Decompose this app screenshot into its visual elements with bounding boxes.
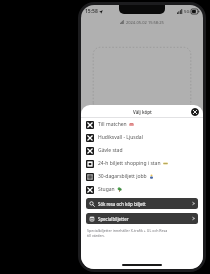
button[interactable]: Stugan [81, 183, 203, 196]
button[interactable]: Hudiksvall - Ljusdal [81, 131, 203, 144]
staticText: Gävle stad [98, 147, 123, 154]
staticText: Sök resa och köp biljett [98, 201, 146, 207]
button[interactable]: 24-h biljett shopping i stan [81, 157, 203, 170]
staticText: 15:58 [85, 8, 98, 15]
staticText: 30-dagarsbiljett jobb [98, 173, 147, 180]
staticText: Till matchen [98, 121, 127, 128]
button[interactable]: Specialbiljetter [86, 213, 198, 224]
button[interactable]: Sök resa och köp biljett [86, 198, 198, 209]
button[interactable]: Stäng [191, 108, 199, 116]
staticText: 24-h biljett shopping i stan [98, 160, 161, 167]
staticText: 2024-05-02 15:58:25 [126, 20, 164, 25]
staticText: Specialbiljetter innehåller X-trafik + U… [87, 228, 168, 238]
staticText: 5G [184, 9, 190, 15]
staticText: Specialbiljetter [98, 216, 129, 222]
staticText: Stugan [98, 186, 115, 193]
staticText: Hudiksvall - Ljusdal [98, 134, 143, 141]
button[interactable]: Gävle stad [81, 144, 203, 157]
button[interactable]: 30-dagarsbiljett jobb [81, 170, 203, 183]
staticText: Välj köpt [133, 109, 152, 115]
button[interactable]: Till matchen [81, 118, 203, 131]
